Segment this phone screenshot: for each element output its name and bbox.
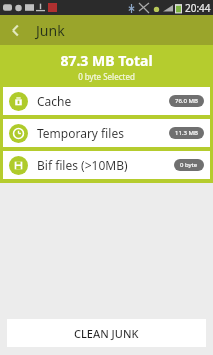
staticText: Junk — [36, 21, 65, 40]
staticText: 20:44 — [185, 1, 211, 15]
staticText: 11.3 MB — [175, 129, 198, 137]
button[interactable]: Back — [0, 15, 30, 45]
button[interactable]: Cache — [3, 87, 210, 115]
staticText: Cache — [37, 93, 72, 109]
staticText: 87.3 MB Total — [60, 51, 153, 70]
staticText: CLEAN JUNK — [74, 326, 139, 341]
button[interactable]: Bif files (>10MB) — [3, 151, 210, 179]
staticText: 76.0 MB — [175, 97, 198, 105]
button[interactable]: CLEAN JUNK — [7, 319, 206, 347]
button[interactable]: Temporary files — [3, 119, 210, 147]
staticText: Temporary files — [37, 125, 124, 141]
staticText: Bif files (>10MB) — [37, 157, 128, 173]
staticText: 0 byte Selected — [78, 71, 135, 82]
staticText: 0 byte — [180, 161, 198, 169]
